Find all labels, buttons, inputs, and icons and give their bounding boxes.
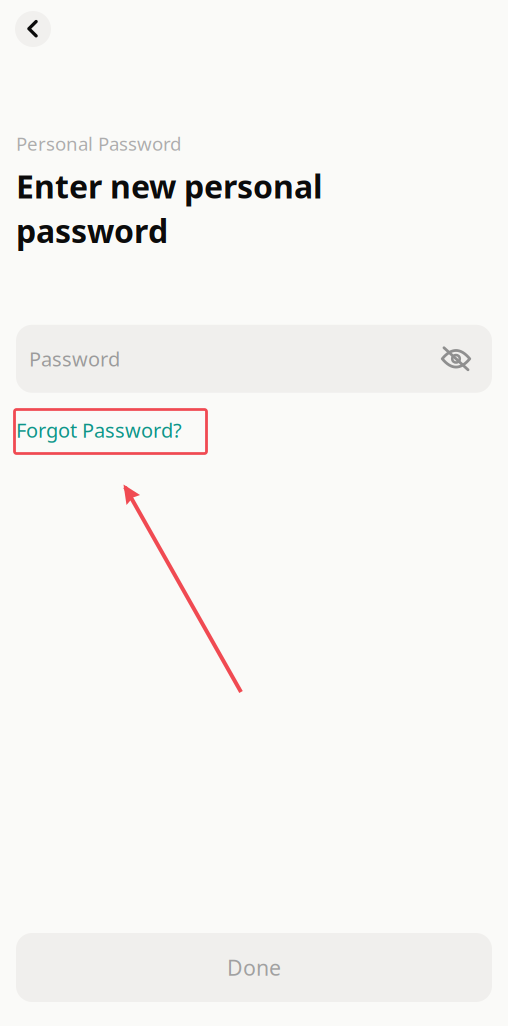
staticText: Forgot Password? (16, 417, 182, 443)
button[interactable]: Back (15, 11, 51, 47)
button[interactable]: Done (16, 933, 492, 1002)
staticText: Password (29, 345, 120, 372)
button[interactable]: Show password (440, 345, 472, 373)
staticText: Personal Password (16, 131, 181, 156)
staticText: Done (227, 953, 281, 982)
staticText: Enter new personal password (16, 165, 323, 252)
button[interactable]: Forgot Password? (16, 417, 182, 443)
